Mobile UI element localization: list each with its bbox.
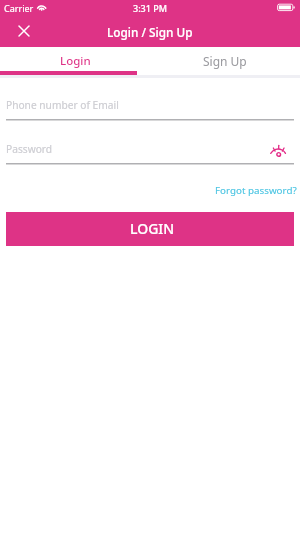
staticText: Password — [6, 142, 53, 156]
staticText: LOGIN — [130, 219, 175, 238]
button[interactable]: Show password — [266, 140, 294, 163]
button[interactable]: Login — [0, 47, 150, 74]
staticText: 3:31 PM — [0, 2, 300, 14]
staticText: Login / Sign Up — [107, 24, 193, 40]
button[interactable]: LOGIN — [6, 212, 294, 246]
staticText: Phone number of Email — [6, 98, 119, 112]
staticText: Sign Up — [203, 53, 247, 69]
button[interactable]: Close — [0, 20, 47, 41]
button[interactable]: Forgot password? — [208, 180, 298, 200]
staticText: Carrier — [4, 2, 34, 14]
staticText: Forgot password? — [215, 184, 297, 197]
button[interactable]: Sign Up — [150, 47, 300, 74]
staticText: Login — [60, 53, 91, 69]
